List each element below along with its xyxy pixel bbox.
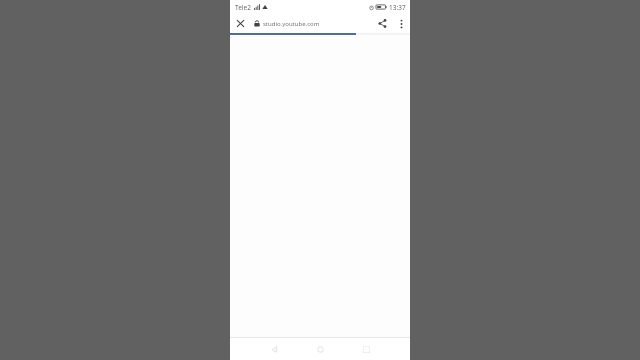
- button[interactable]: Recent apps: [355, 338, 377, 360]
- button[interactable]: Close: [230, 14, 250, 33]
- button[interactable]: studio.youtube.com: [250, 14, 372, 33]
- staticText: Tele2: [235, 3, 251, 12]
- button[interactable]: Home: [309, 338, 331, 360]
- staticText: 13:37: [389, 3, 406, 12]
- button[interactable]: Share: [372, 14, 392, 33]
- staticText: studio.youtube.com: [263, 20, 320, 28]
- button[interactable]: More options: [392, 14, 410, 33]
- button[interactable]: Back: [263, 338, 285, 360]
